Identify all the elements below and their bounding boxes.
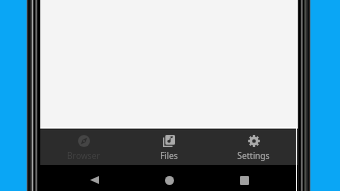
staticText: Settings xyxy=(237,150,270,162)
button[interactable]: Settings xyxy=(211,131,296,165)
button[interactable]: Back xyxy=(77,165,111,191)
staticText: Browser xyxy=(67,150,100,162)
staticText: Files xyxy=(160,150,178,162)
button[interactable]: Browser xyxy=(41,131,126,165)
button[interactable]: Home xyxy=(152,165,186,191)
button[interactable]: Recent apps xyxy=(227,165,261,191)
button[interactable]: Files xyxy=(126,131,211,165)
